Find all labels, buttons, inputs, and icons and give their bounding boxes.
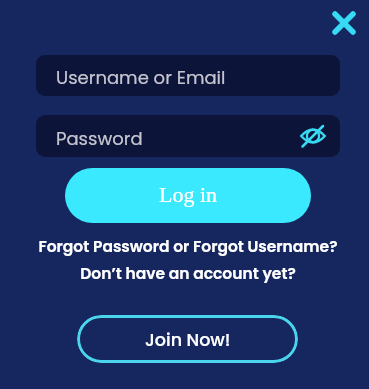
button[interactable] — [330, 9, 358, 37]
button[interactable]: Log in — [65, 168, 311, 223]
staticText: Password — [56, 126, 143, 151]
button[interactable] — [300, 123, 326, 149]
staticText: Don’t have an account yet? — [80, 263, 296, 285]
button[interactable]: Join Now! — [77, 315, 298, 363]
button[interactable]: Don’t have an account yet? — [3, 262, 369, 286]
staticText: Join Now! — [145, 328, 231, 353]
staticText: Forgot Password or Forgot Username? — [38, 236, 338, 258]
staticText: Username or Email — [56, 65, 226, 90]
button[interactable]: Username or Email — [36, 55, 340, 96]
staticText: Log in — [159, 182, 218, 206]
button[interactable]: Forgot Password or Forgot Username? — [3, 235, 369, 259]
button[interactable]: Password — [36, 115, 340, 157]
